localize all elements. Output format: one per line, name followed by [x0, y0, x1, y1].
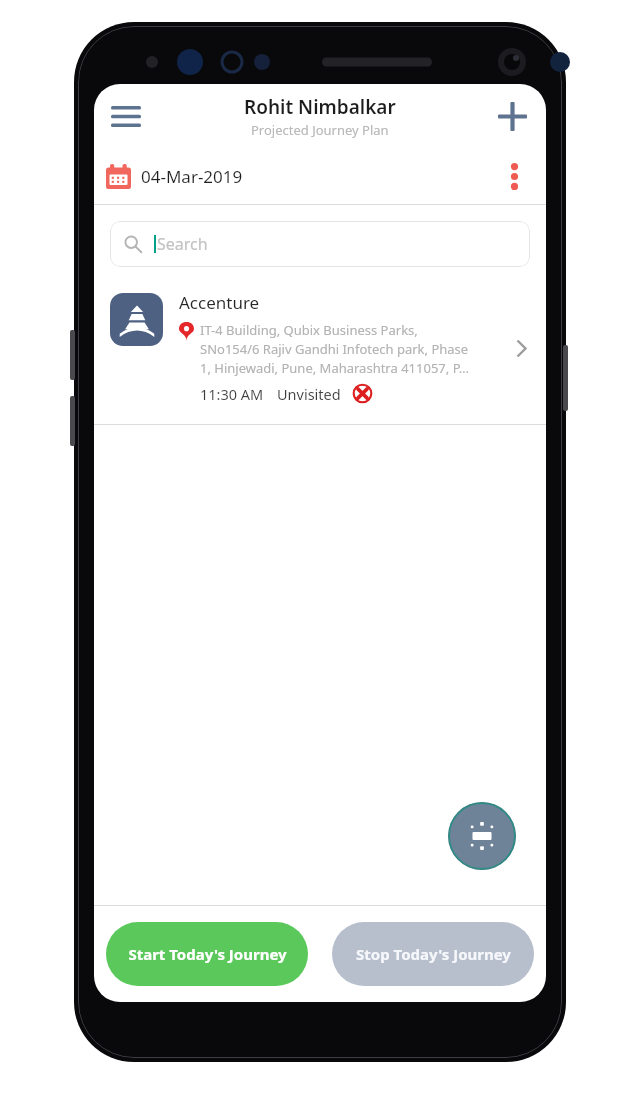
staticText: Stop Today's Journey: [356, 944, 511, 964]
staticText: Unvisited: [277, 384, 341, 404]
button[interactable]: Stop Today's Journey: [332, 922, 534, 986]
button[interactable]: Optimize route: [448, 802, 516, 870]
staticText: Search: [157, 233, 208, 255]
button[interactable]: Open navigation menu: [100, 90, 152, 142]
staticText: Start Today's Journey: [128, 944, 287, 964]
staticText: 11:30 AM: [200, 384, 264, 404]
staticText: Rohit Nimbalkar: [244, 94, 396, 120]
staticText: IT-4 Building, Qubix Business Parks, SNo…: [200, 321, 470, 377]
button[interactable]: Accenture: [94, 279, 546, 424]
button[interactable]: Search: [110, 221, 530, 267]
staticText: Projected Journey Plan: [251, 121, 389, 139]
staticText: 04-Mar-2019: [141, 165, 243, 188]
staticText: Accenture: [179, 291, 260, 314]
button[interactable]: Add journey: [486, 90, 538, 142]
button[interactable]: 04-Mar-2019: [106, 164, 243, 189]
button[interactable]: Start Today's Journey: [106, 922, 308, 986]
button[interactable]: More options: [492, 154, 536, 198]
